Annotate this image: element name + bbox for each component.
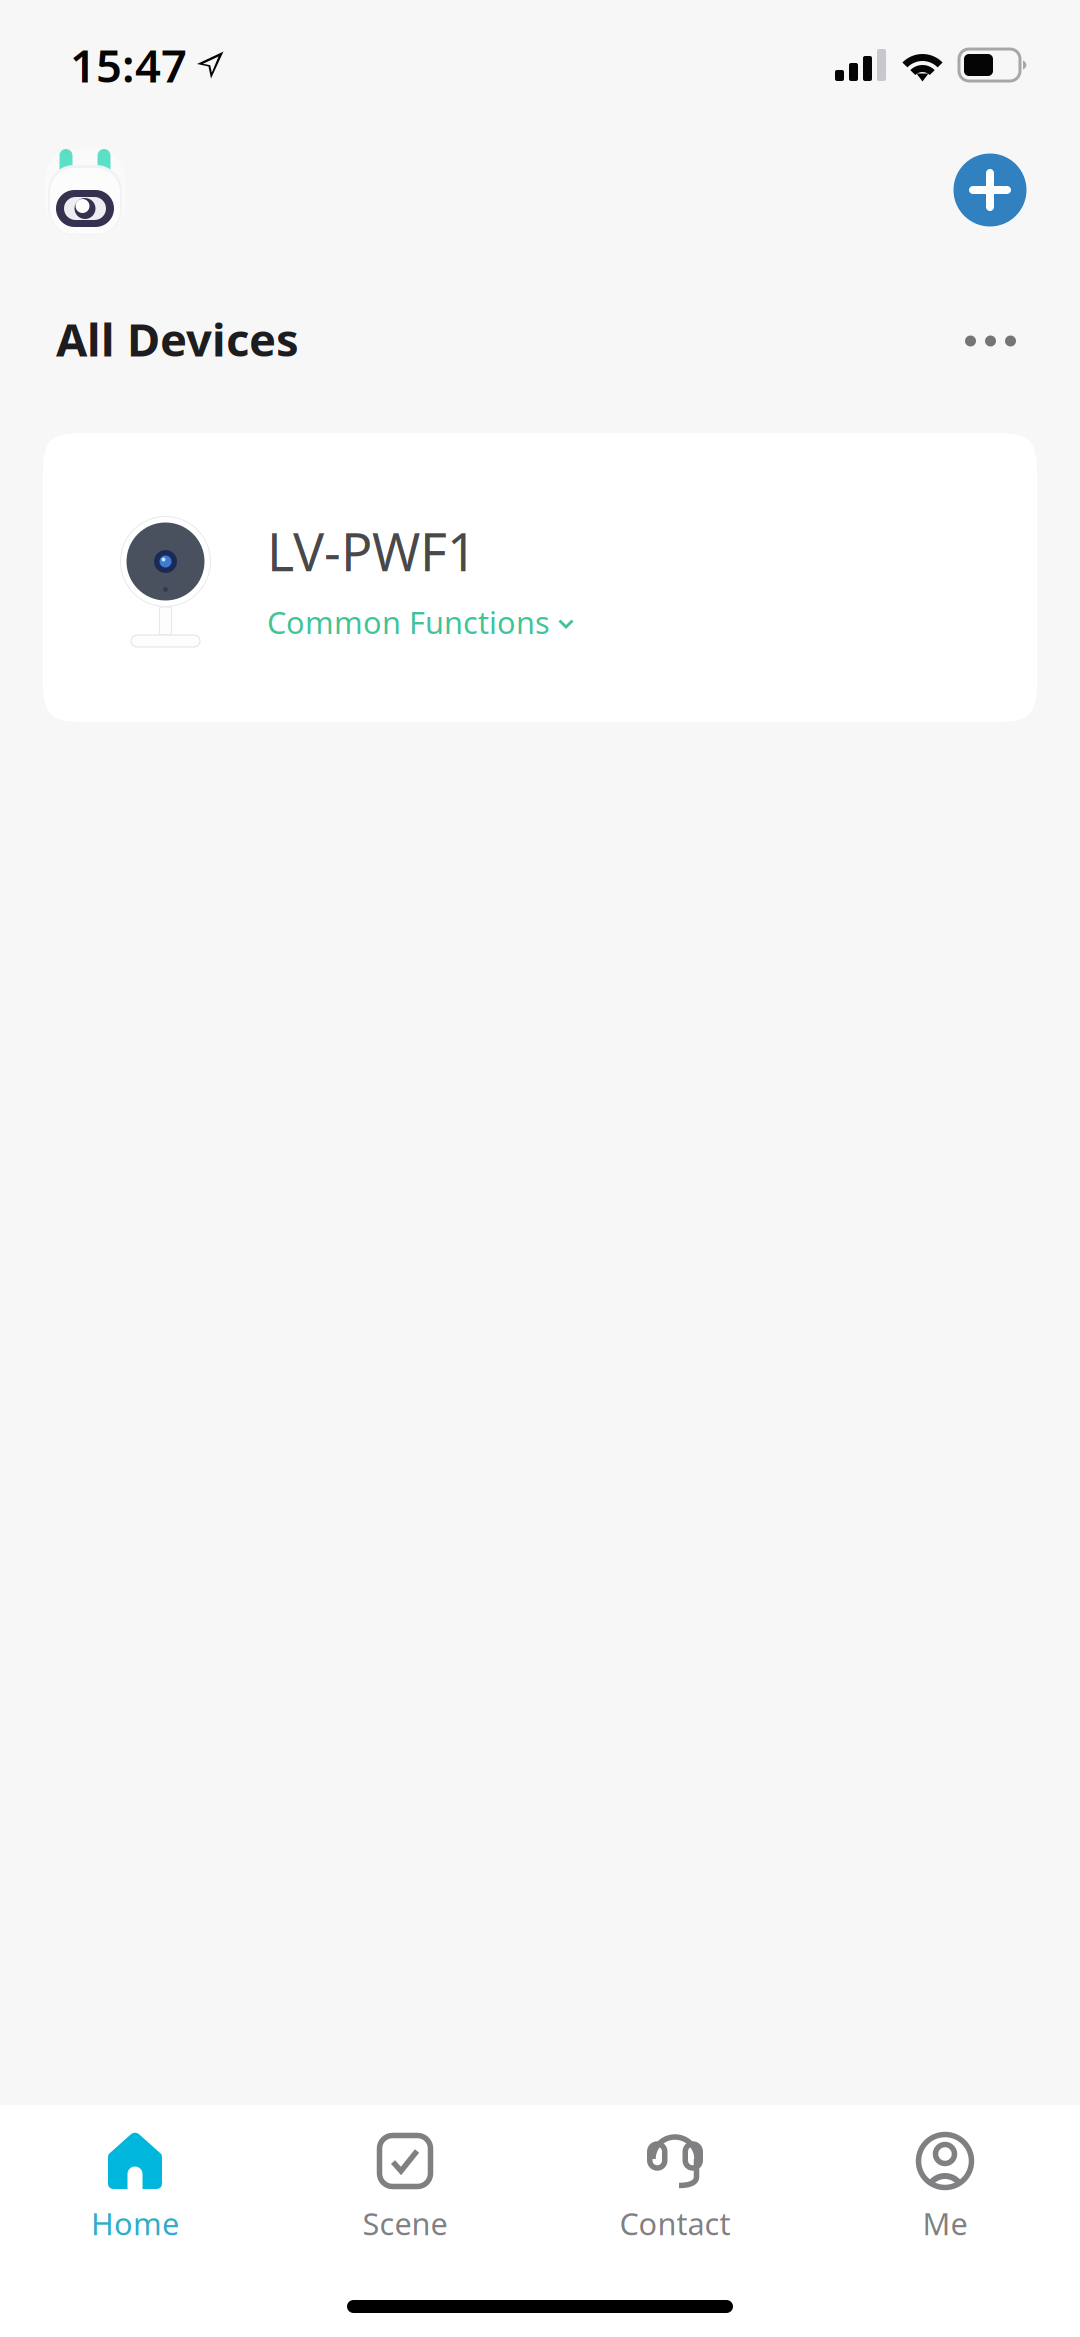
button[interactable]: Add device <box>947 147 1033 233</box>
button[interactable]: Home <box>0 2132 270 2262</box>
button[interactable]: LV-PWF1 <box>43 433 1037 722</box>
button[interactable]: Scene <box>270 2132 540 2262</box>
staticText: Common Functions <box>267 602 550 642</box>
staticText: Scene <box>362 2203 447 2244</box>
staticText: LV-PWF1 <box>267 517 477 586</box>
button[interactable]: Contact <box>540 2132 810 2262</box>
staticText: 15:47 <box>70 35 187 95</box>
button[interactable]: Profile <box>44 142 126 238</box>
staticText: Home <box>91 2203 179 2244</box>
staticText: Contact <box>619 2203 730 2244</box>
button[interactable]: Me <box>810 2132 1080 2262</box>
staticText: Me <box>922 2203 967 2244</box>
staticText: All Devices <box>56 309 299 369</box>
button[interactable]: More options <box>926 302 1016 376</box>
